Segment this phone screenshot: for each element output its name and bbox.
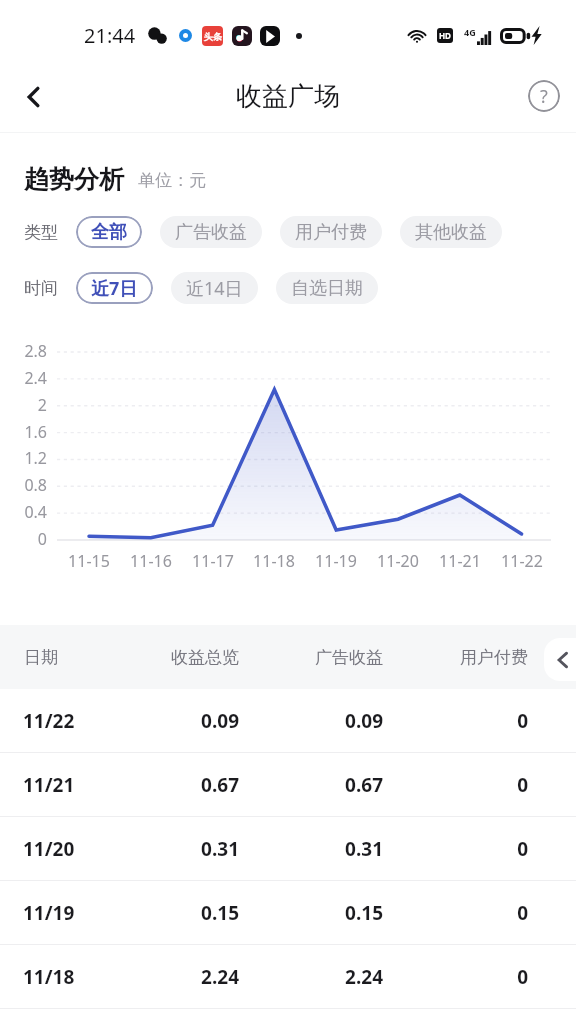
staticText: 0.67: [233, 772, 383, 798]
staticText: 0.31: [233, 836, 383, 862]
button[interactable]: 全部: [76, 216, 142, 248]
staticText: 4G: [464, 26, 476, 38]
staticText: 11-15: [59, 550, 119, 572]
staticText: 11-20: [368, 550, 428, 572]
button[interactable]: Scroll left: [544, 638, 576, 681]
staticText: 趋势分析: [24, 164, 124, 195]
staticText: 类型: [24, 222, 58, 243]
staticText: 2: [0, 394, 47, 416]
staticText: 1.2: [0, 447, 47, 469]
staticText: 11/20: [23, 836, 75, 862]
button[interactable]: 11/19: [0, 881, 576, 945]
staticText: 11-21: [430, 550, 490, 572]
staticText: 近14日: [186, 276, 243, 301]
staticText: 全部: [91, 221, 127, 244]
button[interactable]: 广告收益: [160, 216, 262, 248]
staticText: 11-22: [492, 550, 552, 572]
staticText: 11/19: [23, 900, 75, 926]
staticText: 0: [378, 836, 528, 862]
staticText: HD: [439, 30, 451, 41]
staticText: 近7日: [91, 276, 138, 301]
staticText: 11-17: [183, 550, 243, 572]
button[interactable]: 11/22: [0, 689, 576, 753]
button[interactable]: Help: [522, 75, 566, 119]
staticText: 0.4: [0, 501, 47, 523]
staticText: 0: [378, 964, 528, 990]
staticText: 广告收益: [175, 221, 247, 244]
staticText: 0.67: [89, 772, 239, 798]
staticText: 2.4: [0, 367, 47, 389]
staticText: 单位：元: [138, 170, 206, 191]
staticText: 11/21: [23, 772, 75, 798]
staticText: 11-16: [121, 550, 181, 572]
button[interactable]: 其他收益: [400, 216, 502, 248]
button[interactable]: 11/20: [0, 817, 576, 881]
staticText: 11-19: [306, 550, 366, 572]
staticText: 收益总览: [89, 647, 239, 668]
staticText: 11/18: [23, 964, 75, 990]
staticText: 头条: [204, 31, 222, 42]
staticText: ?: [540, 84, 548, 109]
staticText: 0.31: [89, 836, 239, 862]
staticText: 2.8: [0, 340, 47, 362]
staticText: 其他收益: [415, 221, 487, 244]
button[interactable]: Back: [10, 73, 58, 121]
staticText: 用户付费: [378, 647, 528, 668]
staticText: 时间: [24, 278, 58, 299]
staticText: 2.24: [89, 964, 239, 990]
button[interactable]: 用户付费: [280, 216, 382, 248]
staticText: 广告收益: [233, 647, 383, 668]
button[interactable]: 近14日: [171, 272, 258, 304]
staticText: 0: [378, 772, 528, 798]
staticText: 0.15: [233, 900, 383, 926]
staticText: 收益广场: [236, 80, 340, 113]
staticText: 11-18: [244, 550, 304, 572]
staticText: 0.8: [0, 474, 47, 496]
staticText: 2.24: [233, 964, 383, 990]
staticText: 11/22: [23, 708, 75, 734]
staticText: 0.09: [233, 708, 383, 734]
staticText: 1.6: [0, 421, 47, 443]
staticText: 0: [378, 900, 528, 926]
button[interactable]: 自选日期: [276, 272, 378, 304]
staticText: 日期: [24, 647, 58, 668]
staticText: 0.15: [89, 900, 239, 926]
staticText: 用户付费: [295, 221, 367, 244]
button[interactable]: 近7日: [76, 272, 153, 304]
staticText: 0.09: [89, 708, 239, 734]
staticText: 0: [0, 528, 47, 550]
staticText: 21:44: [84, 22, 136, 49]
button[interactable]: 11/18: [0, 945, 576, 1009]
staticText: 自选日期: [291, 277, 363, 300]
staticText: 0: [378, 708, 528, 734]
button[interactable]: 11/21: [0, 753, 576, 817]
